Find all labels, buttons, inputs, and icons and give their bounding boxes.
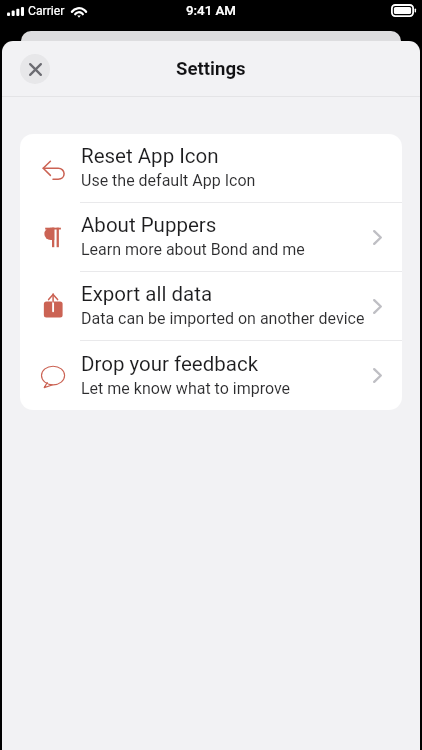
staticText: Data can be imported on another device bbox=[81, 309, 365, 328]
staticText: Reset App Icon bbox=[81, 144, 219, 168]
button[interactable]: About Puppers bbox=[20, 203, 402, 271]
button[interactable]: Reset App Icon bbox=[20, 134, 402, 202]
staticText: Learn more about Bond and me bbox=[81, 240, 305, 259]
staticText: Settings bbox=[176, 58, 246, 80]
staticText: Export all data bbox=[81, 282, 213, 306]
button[interactable]: Close bbox=[20, 54, 50, 84]
staticText: Carrier bbox=[28, 4, 65, 18]
button[interactable]: Export all data bbox=[20, 272, 402, 340]
button[interactable]: Drop your feedback bbox=[20, 341, 402, 410]
staticText: Use the default App Icon bbox=[81, 171, 256, 190]
staticText: Drop your feedback bbox=[81, 352, 259, 376]
staticText: About Puppers bbox=[81, 213, 217, 237]
staticText: 9:41 AM bbox=[186, 3, 236, 19]
staticText: Let me know what to improve bbox=[81, 379, 291, 398]
